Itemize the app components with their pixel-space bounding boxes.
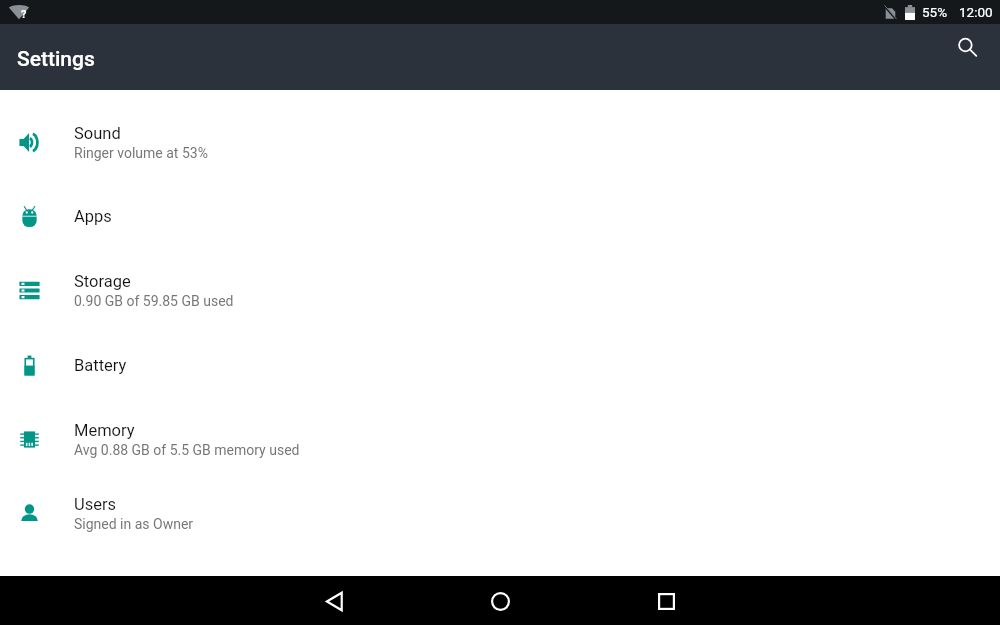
button[interactable]: Storage: [0, 253, 1000, 327]
staticText: 12:00: [959, 4, 993, 20]
staticText: Avg 0.88 GB of 5.5 GB memory used: [74, 442, 300, 458]
button[interactable]: Home: [476, 577, 524, 625]
staticText: 55%: [922, 4, 948, 20]
button[interactable]: Recent apps: [642, 577, 690, 625]
button[interactable]: Search: [946, 26, 988, 68]
staticText: Ringer volume at 53%: [74, 145, 208, 161]
button[interactable]: Sound: [0, 105, 1000, 179]
staticText: Storage: [74, 272, 131, 291]
staticText: Battery: [74, 356, 127, 375]
button[interactable]: Battery: [0, 328, 1000, 402]
staticText: Signed in as Owner: [74, 516, 194, 532]
staticText: Settings: [17, 47, 95, 72]
button[interactable]: Apps: [0, 179, 1000, 253]
staticText: Sound: [74, 124, 121, 143]
staticText: Memory: [74, 421, 135, 440]
staticText: Users: [74, 495, 117, 514]
button[interactable]: Memory: [0, 402, 1000, 476]
staticText: ?: [21, 8, 27, 21]
staticText: Apps: [74, 207, 112, 226]
button[interactable]: Users: [0, 476, 1000, 550]
staticText: 0.90 GB of 59.85 GB used: [74, 293, 234, 309]
button[interactable]: Back: [310, 577, 358, 625]
